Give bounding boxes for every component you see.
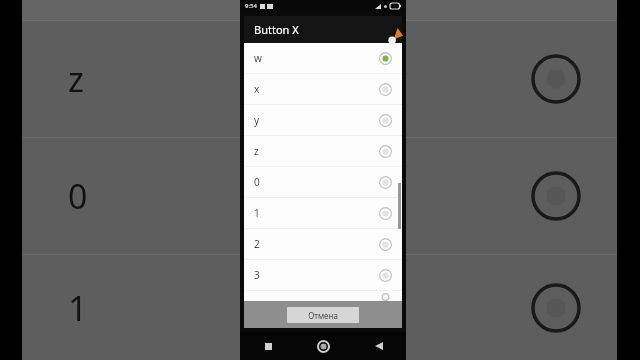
staticText: z: [68, 56, 84, 102]
staticText: Отмена: [308, 310, 338, 321]
staticText: x: [254, 82, 379, 96]
button[interactable]: x: [244, 74, 402, 104]
staticText: y: [254, 113, 379, 127]
button[interactable]: 3: [244, 260, 402, 290]
button[interactable]: Back: [351, 332, 406, 360]
button[interactable]: 1: [244, 198, 402, 228]
staticText: 0: [254, 175, 379, 189]
button[interactable]: Recents: [240, 332, 296, 360]
button[interactable]: y: [244, 105, 402, 135]
staticText: 3: [254, 268, 379, 282]
staticText: z: [254, 144, 379, 158]
staticText: 2: [254, 237, 379, 251]
button[interactable]: 0: [244, 167, 402, 197]
staticText: Button X: [254, 22, 299, 37]
button[interactable]: Отмена: [287, 307, 359, 323]
staticText: w: [254, 51, 379, 65]
staticText: 1: [68, 285, 88, 331]
button[interactable]: z: [244, 136, 402, 166]
button[interactable]: 2: [244, 229, 402, 259]
staticText: 9:54: [245, 2, 257, 10]
button[interactable]: w: [244, 43, 402, 73]
button[interactable]: Home: [296, 332, 351, 360]
staticText: 0: [68, 173, 88, 219]
staticText: 1: [254, 206, 379, 220]
